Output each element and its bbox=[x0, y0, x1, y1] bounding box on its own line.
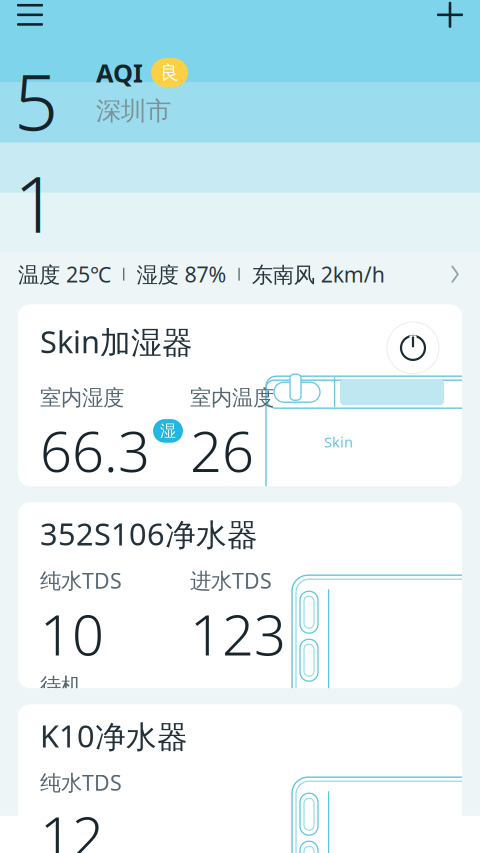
staticText: 室内湿度 bbox=[40, 385, 124, 411]
staticText: 室内温度 bbox=[190, 385, 274, 411]
staticText: 湿度 87% bbox=[136, 260, 226, 288]
staticText: 123 bbox=[190, 596, 286, 671]
staticText: 10 bbox=[40, 596, 104, 671]
staticText: 26 bbox=[190, 413, 254, 487]
staticText: 待机 bbox=[40, 673, 82, 699]
staticText: 66.3 bbox=[40, 413, 150, 487]
staticText: 东南风 2km/h bbox=[252, 260, 385, 288]
button[interactable]: 温度 25℃ bbox=[0, 254, 480, 294]
staticText: 良 bbox=[160, 61, 179, 84]
staticText: 12 bbox=[40, 798, 104, 853]
button[interactable]: 352S106净水器 bbox=[18, 502, 462, 688]
button[interactable]: Add device bbox=[423, 0, 477, 37]
staticText: 温度 25℃ bbox=[18, 260, 111, 288]
button[interactable]: Menu bbox=[3, 0, 57, 37]
staticText: 纯水TDS bbox=[40, 768, 122, 796]
button[interactable]: Skin bbox=[18, 304, 462, 486]
staticText: 湿 bbox=[160, 421, 176, 441]
staticText: 深圳市 bbox=[96, 95, 171, 126]
staticText: 51 bbox=[14, 49, 58, 254]
staticText: 纯水TDS bbox=[40, 566, 122, 594]
staticText: K10净水器 bbox=[40, 715, 188, 756]
staticText: 352S106净水器 bbox=[40, 513, 258, 554]
button[interactable]: K10净水器 bbox=[18, 704, 462, 853]
staticText: 进水TDS bbox=[190, 566, 272, 594]
staticText: Skin加湿器 bbox=[40, 321, 193, 362]
staticText: AQI bbox=[96, 56, 143, 89]
staticText: Skin bbox=[324, 432, 353, 452]
